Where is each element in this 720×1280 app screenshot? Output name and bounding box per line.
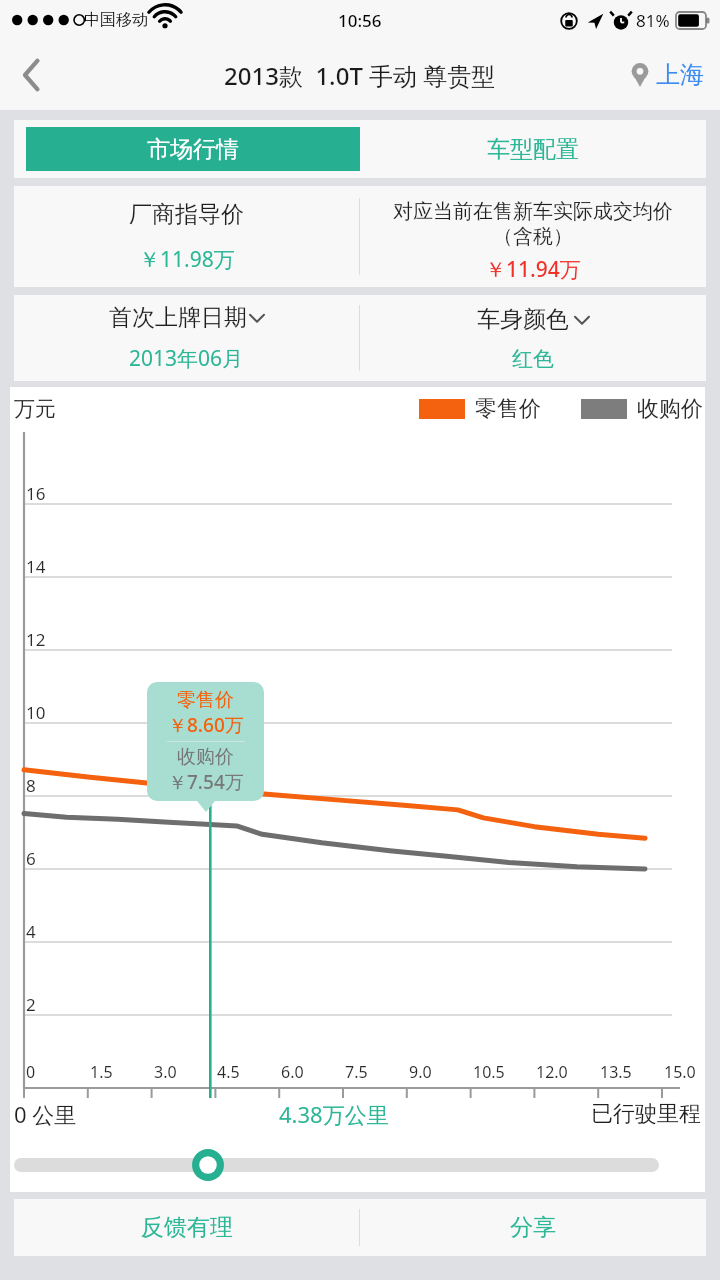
staticText: 2013年06月 [129,344,244,373]
staticText: 车型配置 [487,135,579,164]
staticText: ￥8.60万 [168,712,244,738]
staticText: 上海 [656,60,704,90]
staticText: 3.0 [154,1061,177,1083]
staticText: ￥11.98万 [139,245,235,274]
staticText: 10.5 [473,1061,505,1083]
staticText: 万元 [14,396,56,422]
staticText: 14 [26,555,46,578]
staticText: 12 [26,628,46,651]
staticText: 16 [26,482,46,505]
staticText: 分享 [510,1213,556,1242]
staticText: 2 [26,993,36,1016]
staticText: 反馈有理 [141,1213,233,1242]
button[interactable]: Mileage slider [189,1146,227,1184]
staticText: 4 [26,920,36,943]
button[interactable]: 车身颜色 [360,295,706,381]
button[interactable]: 市场行情 [26,127,360,171]
staticText: 零售价 [177,688,234,712]
staticText: 7.5 [345,1061,368,1083]
staticText: 15.0 [664,1061,696,1083]
staticText: 2013款 1.0T 手动 尊贵型 [224,59,496,92]
staticText: 4.5 [217,1061,240,1083]
staticText: 1.5 [90,1061,113,1083]
staticText: 中国移动 [84,10,148,30]
button[interactable]: Back [0,43,64,107]
staticText: 收购价 [637,395,703,423]
staticText: 零售价 [475,395,541,423]
staticText: 4.38万公里 [279,1099,389,1129]
staticText: 81% [636,9,670,32]
staticText: 收购价 [177,745,234,769]
staticText: 6.0 [281,1061,304,1083]
staticText: （含税） [493,224,573,249]
staticText: 0 [26,1061,36,1083]
staticText: ￥11.94万 [485,255,581,284]
button[interactable]: 分享 [360,1199,706,1256]
staticText: 10:56 [338,9,382,32]
staticText: 13.5 [600,1061,632,1083]
staticText: 红色 [512,346,554,372]
staticText: 对应当前在售新车实际成交均价 [393,199,673,224]
staticText: 10 [26,701,46,724]
staticText: 厂商指导价 [129,200,244,229]
staticText: 8 [26,774,36,797]
staticText: ￥7.54万 [168,769,244,795]
staticText: 已行驶里程 [591,1100,701,1128]
staticText: 首次上牌日期 [109,303,247,332]
staticText: 6 [26,847,36,870]
staticText: 9.0 [409,1061,432,1083]
button[interactable]: 反馈有理 [14,1199,359,1256]
button[interactable] [14,1158,659,1172]
button[interactable]: 上海 [630,60,704,90]
button[interactable]: 车型配置 [360,120,706,178]
staticText: 12.0 [536,1061,568,1083]
staticText: 市场行情 [147,135,239,164]
button[interactable]: 首次上牌日期 [14,295,359,381]
staticText: 0 公里 [14,1099,77,1129]
staticText: 车身颜色 [477,305,569,334]
